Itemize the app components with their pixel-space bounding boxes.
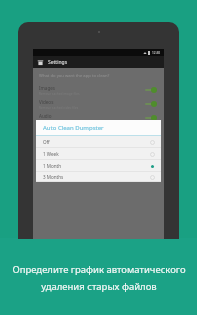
staticText: Auto Clean Dumpster bbox=[43, 124, 104, 132]
staticText: Remove cached docs bbox=[39, 134, 71, 138]
staticText: 12:30 bbox=[152, 51, 161, 55]
staticText: 1 Month bbox=[43, 163, 62, 169]
staticText: Other bbox=[39, 155, 52, 161]
button[interactable]: 1 Week bbox=[36, 148, 161, 160]
button[interactable]: Toggle bbox=[144, 128, 158, 136]
button[interactable]: Videos bbox=[33, 97, 164, 111]
staticText: 1 Week bbox=[43, 151, 59, 157]
button[interactable]: Toggle bbox=[144, 156, 158, 164]
button[interactable]: Toggle bbox=[144, 114, 158, 122]
staticText: Audio bbox=[39, 113, 52, 119]
staticText: 3 Months bbox=[43, 174, 64, 180]
staticText: Определите график автоматического bbox=[12, 263, 186, 276]
button[interactable]: Other bbox=[33, 153, 164, 167]
button[interactable]: Toggle bbox=[144, 142, 158, 150]
button[interactable]: 1 Month bbox=[36, 160, 161, 172]
staticText: Images bbox=[39, 85, 56, 91]
staticText: Documents bbox=[39, 127, 64, 133]
button[interactable]: Toggle bbox=[144, 100, 158, 108]
button[interactable]: Toggle bbox=[144, 86, 158, 94]
staticText: Remove other files bbox=[39, 162, 67, 166]
button[interactable]: 3 Months bbox=[36, 172, 161, 182]
staticText: Videos bbox=[39, 99, 54, 105]
staticText: Settings bbox=[48, 59, 68, 66]
button[interactable]: Audio bbox=[33, 111, 164, 125]
button[interactable]: Off bbox=[36, 136, 161, 148]
staticText: удаления старых файлов bbox=[41, 280, 157, 293]
button[interactable]: Images bbox=[33, 83, 164, 97]
button[interactable]: Documents bbox=[33, 125, 164, 139]
staticText: Off bbox=[43, 139, 50, 145]
button[interactable]: Archives bbox=[33, 139, 164, 153]
other: Dumpster bbox=[37, 59, 44, 66]
staticText: Archives bbox=[39, 141, 58, 147]
staticText: What do you want the app to clean? bbox=[39, 73, 110, 79]
